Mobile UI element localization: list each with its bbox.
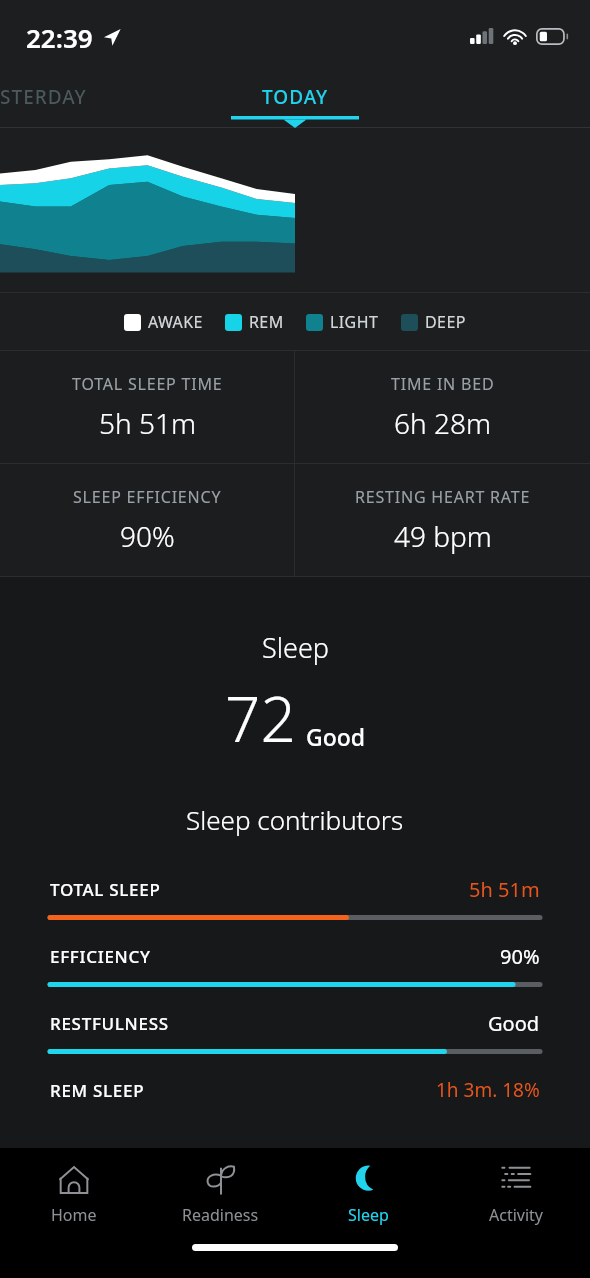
button[interactable]: TOTAL SLEEP — [0, 876, 590, 920]
staticText: 5h 51m — [99, 404, 196, 442]
staticText: REM — [249, 311, 284, 333]
staticText: 72 — [225, 676, 296, 760]
staticText: RESTFULNESS — [50, 1012, 169, 1035]
staticText: Activity — [489, 1204, 544, 1226]
staticText: SLEEP EFFICIENCY — [73, 486, 222, 508]
staticText: RESTING HEART RATE — [355, 486, 531, 508]
button[interactable]: Sleep — [294, 1148, 442, 1240]
staticText: Sleep — [348, 1204, 389, 1226]
staticText: Sleep — [262, 629, 329, 666]
staticText: Home — [51, 1204, 97, 1226]
staticText: Sleep contributors — [186, 802, 404, 837]
staticText: Readiness — [182, 1204, 259, 1226]
button[interactable]: EFFICIENCY — [0, 943, 590, 987]
staticText: 6h 28m — [394, 404, 491, 442]
staticText: Good — [488, 1010, 540, 1037]
staticText: AWAKE — [148, 311, 203, 333]
button[interactable]: Home — [0, 1148, 147, 1240]
button[interactable]: SLEEP EFFICIENCY — [0, 464, 294, 576]
staticText: EFFICIENCY — [50, 945, 151, 968]
staticText: 1h 3m. 18% — [436, 1077, 540, 1103]
staticText: TOTAL SLEEP TIME — [72, 373, 223, 395]
button[interactable]: TODAY — [262, 87, 329, 113]
staticText: 49 bpm — [394, 517, 492, 555]
staticText: TOTAL SLEEP — [50, 878, 161, 901]
button[interactable]: TIME IN BED — [295, 351, 590, 463]
button[interactable]: RESTFULNESS — [0, 1010, 590, 1054]
staticText: Good — [306, 721, 366, 752]
staticText: TODAY — [262, 84, 329, 110]
button[interactable]: Activity — [442, 1148, 590, 1240]
staticText: 5h 51m — [469, 876, 540, 903]
staticText: 22:39 — [26, 20, 93, 55]
staticText: REM SLEEP — [50, 1079, 145, 1102]
button[interactable]: RESTING HEART RATE — [295, 464, 590, 576]
staticText: LIGHT — [330, 311, 379, 333]
staticText: TIME IN BED — [391, 373, 495, 395]
button[interactable]: TOTAL SLEEP TIME — [0, 351, 294, 463]
staticText: DEEP — [425, 311, 466, 333]
staticText: 90% — [500, 943, 540, 970]
button[interactable]: STERDAY — [0, 84, 87, 110]
staticText: 90% — [120, 517, 175, 555]
button[interactable]: Readiness — [147, 1148, 294, 1240]
